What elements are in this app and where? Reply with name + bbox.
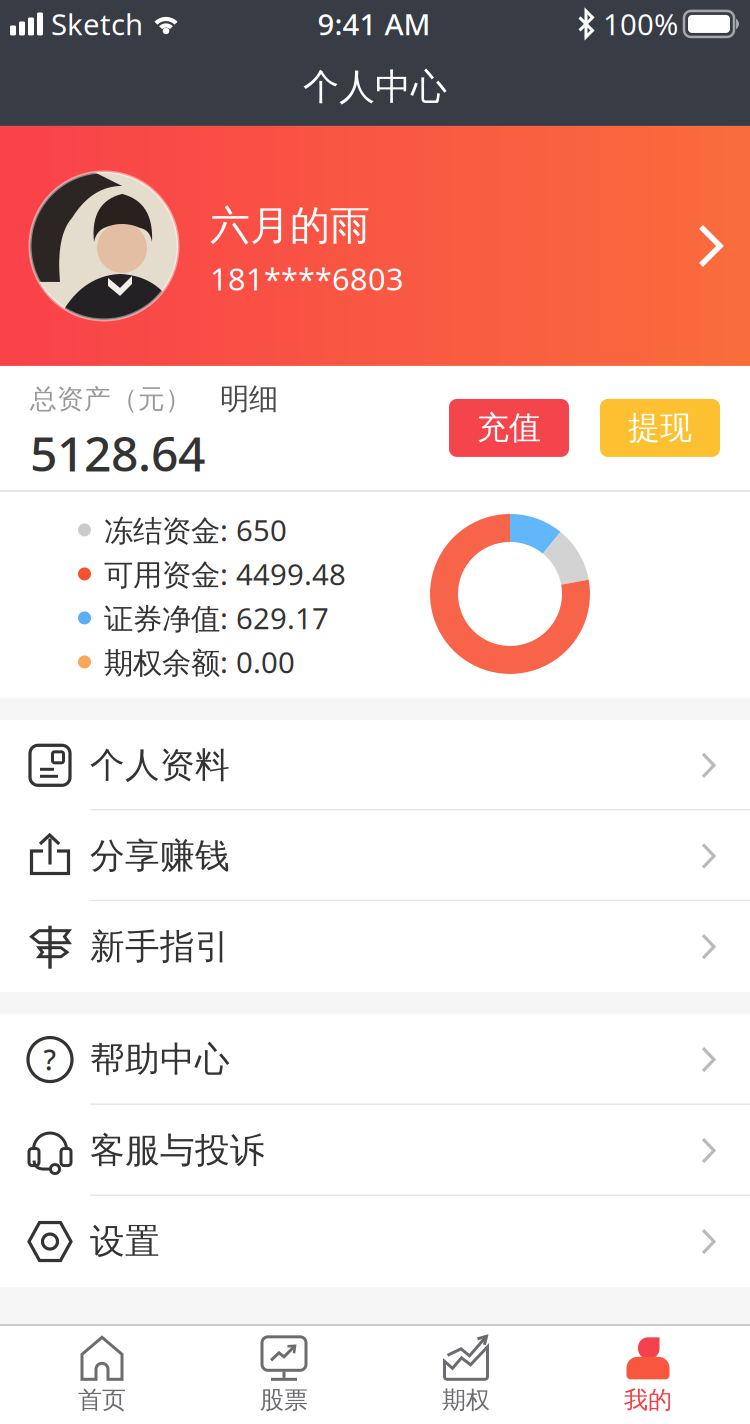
staticText: Sketch bbox=[51, 4, 143, 43]
button[interactable]: 个人资料 bbox=[0, 720, 750, 811]
button[interactable]: 提现 bbox=[600, 399, 720, 457]
staticText: 分享赚钱 bbox=[90, 835, 230, 877]
staticText: 期权余额: 0.00 bbox=[104, 642, 295, 681]
staticText: ? bbox=[43, 1041, 56, 1078]
button[interactable]: 股票 bbox=[193, 1327, 375, 1423]
staticText: 100% bbox=[603, 4, 678, 43]
staticText: 帮助中心 bbox=[90, 1038, 230, 1081]
staticText: 新手指引 bbox=[90, 925, 230, 968]
staticText: 我的 bbox=[624, 1385, 672, 1415]
button[interactable]: 明细 bbox=[192, 381, 278, 417]
staticText: 9:41 AM bbox=[317, 4, 430, 43]
staticText: 六月的雨 bbox=[210, 201, 370, 250]
staticText: 明细 bbox=[220, 381, 278, 417]
button[interactable]: 设置 bbox=[0, 1196, 750, 1287]
staticText: 设置 bbox=[90, 1220, 160, 1263]
staticText: 提现 bbox=[628, 408, 692, 448]
staticText: 181****6803 bbox=[210, 258, 404, 299]
staticText: 个人资料 bbox=[90, 744, 230, 787]
button[interactable]: 六月的雨 bbox=[0, 126, 750, 366]
button[interactable]: 新手指引 bbox=[0, 901, 750, 992]
button[interactable]: 我的 bbox=[557, 1327, 739, 1423]
staticText: 个人中心 bbox=[303, 65, 447, 109]
staticText: 证券净值: 629.17 bbox=[104, 598, 329, 637]
button[interactable]: 分享赚钱 bbox=[0, 811, 750, 901]
staticText: 首页 bbox=[78, 1385, 126, 1415]
staticText: 股票 bbox=[260, 1385, 308, 1415]
button[interactable]: 充值 bbox=[449, 399, 569, 457]
staticText: 充值 bbox=[477, 408, 541, 448]
button[interactable]: 期权 bbox=[375, 1327, 557, 1423]
staticText: 可用资金: 4499.48 bbox=[104, 554, 346, 593]
button[interactable]: 客服与投诉 bbox=[0, 1105, 750, 1196]
staticText: 冻结资金: 650 bbox=[104, 510, 287, 549]
staticText: 期权 bbox=[442, 1385, 490, 1415]
staticText: 客服与投诉 bbox=[90, 1129, 265, 1172]
button[interactable]: 首页 bbox=[11, 1327, 193, 1423]
button[interactable]: ? bbox=[0, 1014, 750, 1105]
staticText: 总资产（元） bbox=[30, 383, 192, 415]
staticText: 5128.64 bbox=[30, 421, 205, 485]
